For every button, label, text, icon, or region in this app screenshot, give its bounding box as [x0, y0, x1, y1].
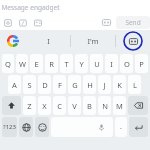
staticText: A [12, 80, 17, 90]
button[interactable]: Google [0, 30, 26, 52]
button[interactable]: GIF [15, 15, 30, 30]
button[interactable]: ?123 [2, 117, 17, 137]
staticText: J [103, 80, 106, 90]
button[interactable]: D [38, 75, 51, 94]
button[interactable]: S [23, 75, 36, 94]
staticText: G [72, 80, 78, 90]
staticText: Send [125, 18, 141, 27]
button[interactable]: V [68, 96, 81, 115]
button[interactable]: Y [75, 54, 88, 73]
staticText: D [42, 80, 48, 90]
button[interactable]: N [98, 96, 111, 115]
staticText: N [102, 101, 108, 111]
button[interactable]: Send [116, 16, 150, 29]
button[interactable]: Gallery [30, 15, 45, 30]
button[interactable]: H [83, 75, 96, 94]
button[interactable]: F [53, 75, 66, 94]
staticText: K [117, 80, 122, 90]
staticText: P [139, 59, 144, 69]
staticText: I [47, 36, 50, 46]
staticText: X [42, 101, 47, 111]
button[interactable]: . [115, 117, 127, 137]
button[interactable]: Q [2, 54, 14, 73]
staticText: H [87, 80, 93, 90]
button[interactable]: Space [51, 117, 113, 137]
button[interactable]: K [113, 75, 126, 94]
staticText: F [58, 80, 62, 90]
staticText: Message engadget [1, 3, 60, 12]
button[interactable]: Shift [2, 96, 21, 115]
staticText: . [120, 122, 122, 132]
staticText: T [64, 59, 69, 69]
staticText: Y [79, 59, 84, 69]
button[interactable]: Camera [98, 14, 114, 30]
button[interactable]: Emoji [35, 117, 49, 137]
staticText: I [110, 59, 113, 69]
button[interactable]: Z [23, 96, 36, 115]
button[interactable]: R [45, 54, 58, 73]
button[interactable]: L [128, 75, 141, 94]
button[interactable]: A [8, 75, 21, 94]
staticText: E [34, 59, 39, 69]
button[interactable]: M [113, 96, 126, 115]
button[interactable]: I [26, 30, 70, 52]
button[interactable]: X [38, 96, 51, 115]
button[interactable]: E [30, 54, 43, 73]
button[interactable]: T [60, 54, 73, 73]
button[interactable]: Language [19, 117, 33, 137]
button[interactable]: P [135, 54, 148, 73]
button[interactable]: Camera suggestion [116, 30, 150, 52]
staticText: V [72, 101, 77, 111]
staticText: Q [5, 59, 11, 69]
button[interactable]: U [90, 54, 103, 73]
staticText: M [116, 101, 123, 111]
button[interactable]: I'm [71, 30, 115, 52]
button[interactable]: G [68, 75, 81, 94]
button[interactable]: Enter [129, 117, 148, 137]
button[interactable]: B [83, 96, 96, 115]
button[interactable]: W [16, 54, 28, 73]
staticText: O [124, 59, 130, 69]
staticText: C [57, 101, 62, 111]
staticText: R [49, 59, 54, 69]
staticText: S [27, 80, 32, 90]
staticText: W [19, 59, 26, 69]
button[interactable]: I [105, 54, 118, 73]
button[interactable]: Attach [0, 15, 15, 30]
button[interactable]: J [98, 75, 111, 94]
staticText: U [94, 59, 100, 69]
staticText: I'm [87, 36, 99, 46]
staticText: L [133, 80, 137, 90]
button[interactable]: Backspace [128, 96, 148, 115]
staticText: Z [27, 101, 32, 111]
staticText: B [87, 101, 92, 111]
button[interactable]: C [53, 96, 66, 115]
staticText: ?123 [3, 123, 16, 131]
button[interactable]: O [120, 54, 133, 73]
